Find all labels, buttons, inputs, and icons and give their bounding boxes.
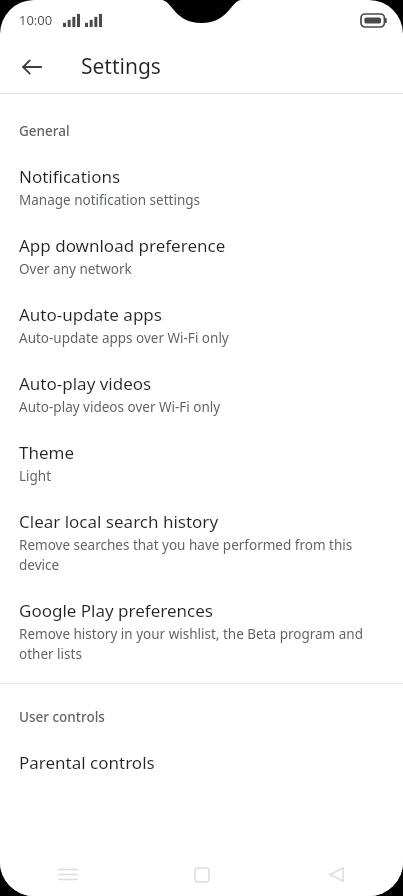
staticText: Parental controls xyxy=(19,751,155,774)
button[interactable]: App download preference xyxy=(0,211,403,280)
staticText: Auto-update apps over Wi-Fi only xyxy=(19,329,229,347)
staticText: Auto-play videos over Wi-Fi only xyxy=(19,398,221,416)
staticText: General xyxy=(19,122,70,140)
button[interactable]: Theme xyxy=(0,418,403,487)
staticText: Theme xyxy=(19,441,75,464)
button[interactable]: Home xyxy=(135,853,269,896)
staticText: Google Play preferences xyxy=(19,599,213,622)
staticText: Remove history in your wishlist, the Bet… xyxy=(19,625,383,663)
button[interactable]: Google Play preferences xyxy=(0,576,403,665)
staticText: Notifications xyxy=(19,165,121,188)
button[interactable]: Notifications xyxy=(0,142,403,211)
staticText: Manage notification settings xyxy=(19,191,201,209)
button[interactable]: Auto-update apps xyxy=(0,280,403,349)
staticText: 10:00 xyxy=(19,11,53,29)
button[interactable]: Back xyxy=(269,853,403,896)
staticText: Clear local search history xyxy=(19,510,219,533)
staticText: Settings xyxy=(81,52,161,81)
staticText: Light xyxy=(19,467,52,485)
button[interactable]: Recent apps xyxy=(0,853,135,896)
button[interactable]: Clear local search history xyxy=(0,487,403,576)
staticText: Remove searches that you have performed … xyxy=(19,536,383,574)
staticText: Over any network xyxy=(19,260,132,278)
staticText: App download preference xyxy=(19,234,226,257)
button[interactable]: Back xyxy=(13,48,51,86)
button[interactable]: Auto-play videos xyxy=(0,349,403,418)
staticText: Auto-update apps xyxy=(19,303,162,326)
staticText: Auto-play videos xyxy=(19,372,152,395)
button[interactable]: Parental controls xyxy=(0,728,403,776)
staticText: User controls xyxy=(19,708,105,726)
